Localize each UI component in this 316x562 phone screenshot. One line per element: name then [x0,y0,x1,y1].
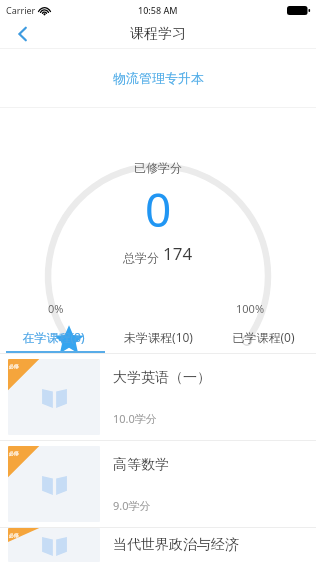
staticText: 课程学习 [130,25,186,43]
staticText: 在学课程(8) [22,329,85,345]
staticText: 必修 [9,532,19,538]
staticText: 174 [163,242,193,265]
button[interactable]: 必修 [0,528,316,562]
staticText: 9.0学分 [113,498,151,513]
button[interactable]: 未学课程(10) [106,321,211,353]
staticText: 0 [145,178,172,241]
staticText: 已学课程(0) [232,329,295,345]
staticText: 当代世界政治与经济 [113,536,239,554]
button[interactable]: 已学课程(0) [211,321,316,353]
button[interactable]: Back [0,20,44,48]
staticText: 未学课程(10) [124,329,193,345]
staticText: 10.0学分 [113,411,157,426]
staticText: 10:58 AM [138,4,178,16]
staticText: 100% [236,301,265,316]
staticText: 大学英语（一） [113,369,211,387]
staticText: 必修 [9,450,19,456]
button[interactable]: 物流管理专升本 [0,49,316,107]
staticText: 高等数学 [113,456,169,474]
button[interactable]: 必修 [0,441,316,527]
staticText: 总学分 [123,249,163,265]
staticText: 必修 [9,363,19,369]
staticText: Carrier [6,4,36,16]
button[interactable]: 在学课程(8) [0,321,106,353]
staticText: 已修学分 [134,160,182,175]
staticText: 0% [48,301,64,316]
button[interactable]: 必修 [0,354,316,440]
staticText: 物流管理专升本 [113,70,204,86]
